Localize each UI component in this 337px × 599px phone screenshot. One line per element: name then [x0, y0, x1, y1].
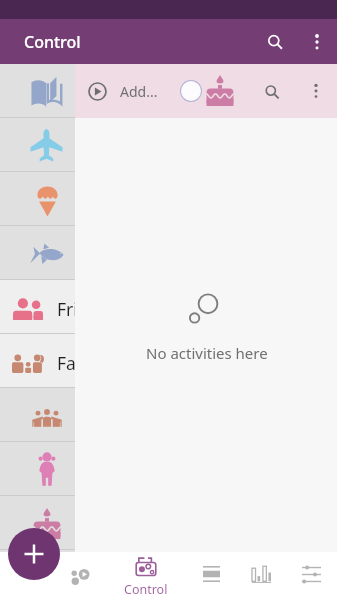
button[interactable]: Search — [255, 75, 288, 108]
button[interactable]: More options — [300, 75, 332, 107]
button[interactable]: Timeline — [186, 552, 236, 599]
staticText: Friends — [57, 297, 118, 321]
button[interactable]: Category — [0, 388, 75, 442]
button[interactable]: Add — [8, 528, 60, 580]
button[interactable]: Control — [105, 552, 186, 599]
staticText: Control — [24, 31, 81, 53]
button[interactable]: Settings — [286, 552, 337, 599]
button[interactable]: Category — [0, 172, 75, 226]
button[interactable]: Family — [0, 334, 75, 388]
button[interactable]: Category — [0, 442, 75, 496]
button[interactable]: Statistics — [236, 552, 286, 599]
staticText: No activities here — [146, 343, 268, 363]
button[interactable]: Category — [0, 64, 75, 118]
button[interactable]: Friends — [0, 280, 75, 334]
button[interactable]: Activity — [54, 552, 105, 599]
button[interactable]: Category — [0, 496, 75, 550]
button[interactable]: Category — [0, 226, 75, 280]
staticText: Family — [57, 351, 111, 375]
button[interactable]: More options — [300, 25, 333, 58]
staticText: Add... — [120, 82, 158, 101]
staticText: Control — [124, 581, 168, 598]
button[interactable]: Category — [0, 118, 75, 172]
button[interactable]: Search — [258, 25, 292, 59]
button[interactable]: Colour — [181, 81, 201, 101]
button[interactable]: Play — [84, 78, 110, 104]
